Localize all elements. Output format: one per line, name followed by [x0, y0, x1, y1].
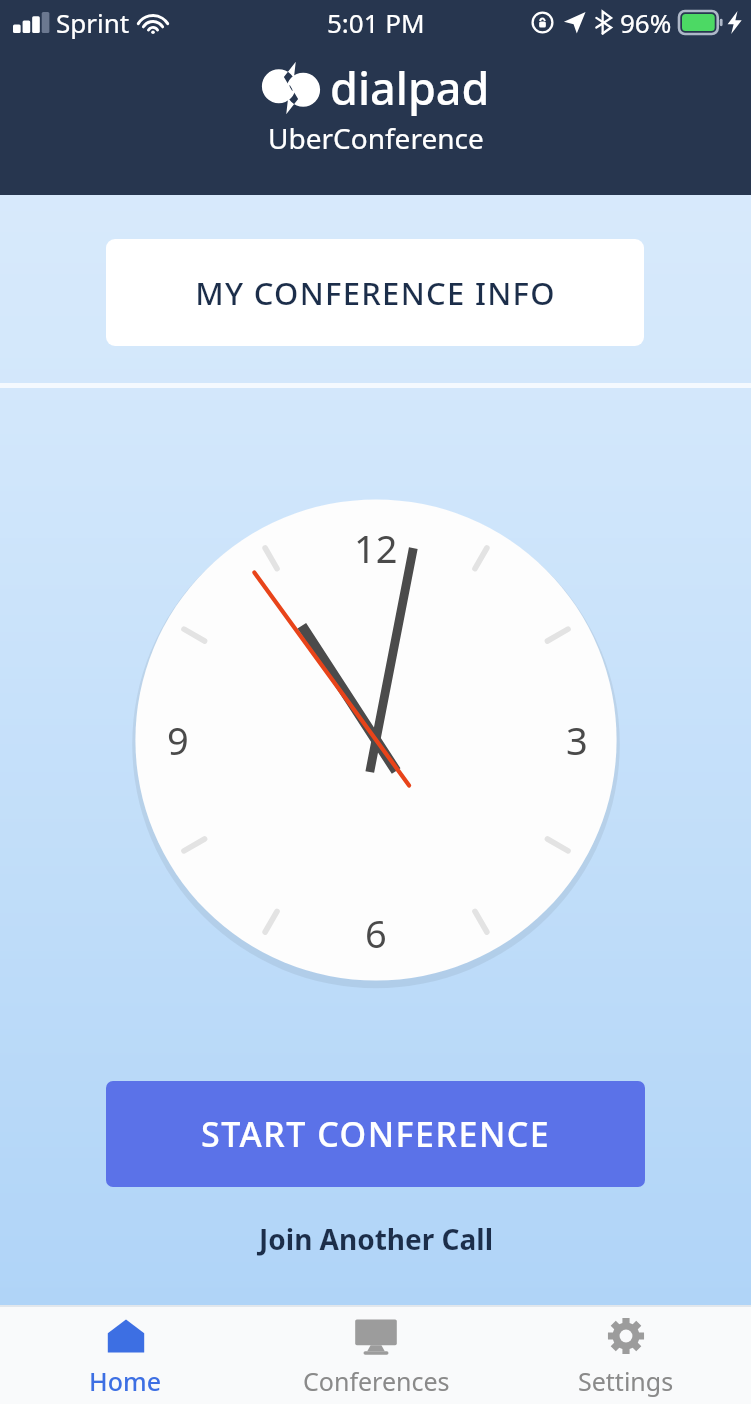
- button[interactable]: Join Another Call: [259, 1220, 493, 1258]
- staticText: START CONFERENCE: [201, 1111, 551, 1157]
- staticText: Sprint: [56, 5, 130, 40]
- staticText: 96%: [620, 5, 672, 40]
- staticText: UberConference: [268, 119, 484, 157]
- staticText: 12: [354, 522, 398, 574]
- staticText: 3: [566, 714, 588, 766]
- button[interactable]: MY CONFERENCE INFO: [106, 239, 644, 346]
- staticText: 6: [365, 907, 387, 959]
- staticText: Settings: [578, 1364, 674, 1398]
- button[interactable]: Home: [0, 1307, 251, 1404]
- staticText: 9: [167, 714, 189, 766]
- staticText: 5:01 PM: [327, 5, 425, 40]
- staticText: Conferences: [303, 1364, 450, 1398]
- button[interactable]: Conferences: [251, 1307, 501, 1404]
- button[interactable]: START CONFERENCE: [106, 1081, 645, 1187]
- staticText: Home: [89, 1364, 162, 1398]
- button[interactable]: Settings: [501, 1307, 751, 1404]
- staticText: MY CONFERENCE INFO: [195, 272, 556, 314]
- staticText: dialpad: [330, 57, 490, 118]
